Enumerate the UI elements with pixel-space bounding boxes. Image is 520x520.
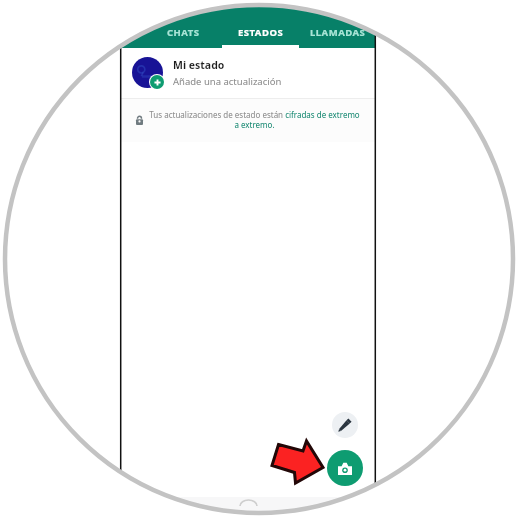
staticText: LLAMADAS xyxy=(310,26,366,39)
staticText: Mi estado xyxy=(173,58,225,72)
staticText: ESTADOS xyxy=(238,26,284,39)
staticText: Añade una actualización xyxy=(173,75,282,88)
button[interactable]: Mi estado xyxy=(120,48,376,98)
button[interactable]: Camera xyxy=(327,450,363,486)
staticText: Tus actualizaciones de estado están cifr… xyxy=(149,109,360,130)
button[interactable]: Write status xyxy=(332,412,358,438)
button[interactable]: CHATS xyxy=(145,16,222,48)
button[interactable]: LLAMADAS xyxy=(299,16,376,48)
staticText: CHATS xyxy=(167,26,200,39)
button[interactable]: Camera tab xyxy=(120,16,145,48)
button[interactable]: ESTADOS xyxy=(222,16,299,48)
